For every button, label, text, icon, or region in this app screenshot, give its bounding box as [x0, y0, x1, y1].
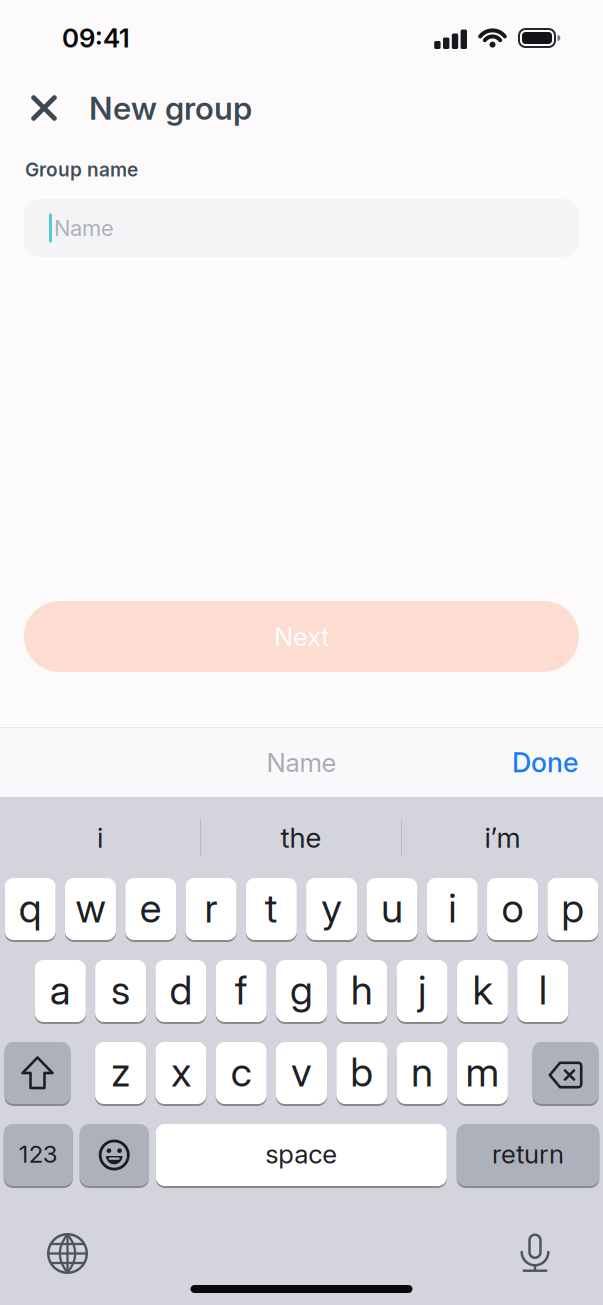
- staticText: Group name: [25, 158, 138, 181]
- button[interactable]: a: [35, 960, 86, 1024]
- staticText: d: [169, 966, 192, 1014]
- staticText: b: [350, 1048, 373, 1096]
- button[interactable]: Close: [27, 86, 61, 130]
- staticText: a: [50, 966, 71, 1014]
- button[interactable]: i: [0, 797, 200, 878]
- button[interactable]: g: [276, 960, 327, 1024]
- button[interactable]: k: [457, 960, 508, 1024]
- button[interactable]: z: [95, 1042, 146, 1106]
- button[interactable]: n: [397, 1042, 448, 1106]
- button[interactable]: w: [65, 878, 116, 942]
- button[interactable]: x: [155, 1042, 206, 1106]
- staticText: Next: [274, 621, 329, 652]
- button[interactable]: Done: [512, 746, 603, 779]
- button[interactable]: d: [155, 960, 206, 1024]
- staticText: h: [351, 966, 373, 1014]
- staticText: i: [97, 821, 103, 854]
- staticText: c: [231, 1048, 252, 1096]
- staticText: 09:41: [62, 22, 130, 54]
- staticText: New group: [89, 89, 252, 127]
- staticText: the: [280, 821, 321, 854]
- button[interactable]: Dictation: [520, 1233, 550, 1273]
- button[interactable]: j: [397, 960, 448, 1024]
- staticText: x: [171, 1048, 191, 1096]
- staticText: f: [235, 966, 248, 1014]
- button[interactable]: return: [457, 1124, 599, 1188]
- staticText: o: [502, 884, 524, 932]
- button[interactable]: h: [336, 960, 387, 1024]
- staticText: y: [321, 884, 342, 932]
- staticText: u: [381, 884, 403, 932]
- button[interactable]: b: [336, 1042, 387, 1106]
- button[interactable]: the: [201, 797, 401, 878]
- staticText: Name: [266, 747, 336, 778]
- staticText: q: [19, 884, 42, 932]
- button[interactable]: Shift: [4, 1042, 70, 1106]
- button[interactable]: i: [427, 878, 478, 942]
- staticText: k: [472, 966, 492, 1014]
- staticText: z: [111, 1048, 130, 1096]
- button[interactable]: r: [185, 878, 236, 942]
- staticText: t: [265, 884, 278, 932]
- button[interactable]: Emoji: [80, 1124, 149, 1188]
- button[interactable]: Name: [0, 199, 603, 257]
- button[interactable]: i’m: [402, 797, 603, 878]
- staticText: g: [290, 966, 313, 1014]
- button[interactable]: v: [276, 1042, 327, 1106]
- button[interactable]: o: [487, 878, 538, 942]
- staticText: n: [411, 1048, 433, 1096]
- button[interactable]: f: [216, 960, 267, 1024]
- staticText: i: [448, 884, 456, 932]
- button[interactable]: t: [246, 878, 297, 942]
- button[interactable]: y: [306, 878, 357, 942]
- button[interactable]: u: [366, 878, 417, 942]
- staticText: p: [561, 884, 584, 932]
- staticText: 123: [19, 1139, 58, 1168]
- button[interactable]: q: [5, 878, 56, 942]
- button[interactable]: space: [156, 1124, 447, 1188]
- staticText: s: [111, 966, 130, 1014]
- staticText: j: [418, 966, 426, 1014]
- staticText: Name: [54, 215, 114, 241]
- staticText: space: [265, 1138, 337, 1170]
- staticText: l: [539, 966, 547, 1014]
- button[interactable]: Switch keyboard: [47, 1233, 88, 1274]
- staticText: return: [492, 1138, 564, 1170]
- staticText: m: [465, 1048, 499, 1096]
- staticText: e: [140, 884, 162, 932]
- button[interactable]: s: [95, 960, 146, 1024]
- button[interactable]: Delete: [532, 1042, 598, 1106]
- staticText: w: [75, 884, 105, 932]
- button[interactable]: Next: [0, 601, 603, 672]
- button[interactable]: l: [517, 960, 568, 1024]
- button[interactable]: p: [547, 878, 598, 942]
- button[interactable]: 123: [4, 1124, 73, 1188]
- staticText: Done: [512, 746, 578, 779]
- button[interactable]: e: [125, 878, 176, 942]
- button[interactable]: c: [216, 1042, 267, 1106]
- staticText: r: [204, 884, 217, 932]
- staticText: v: [291, 1048, 312, 1096]
- staticText: i’m: [484, 821, 520, 854]
- button[interactable]: m: [457, 1042, 508, 1106]
